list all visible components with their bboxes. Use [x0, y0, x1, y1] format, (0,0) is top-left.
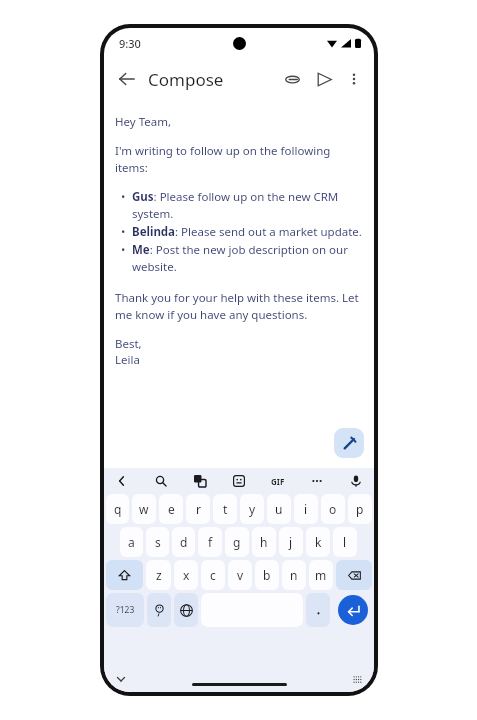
staticText: c	[210, 567, 216, 583]
button[interactable]: g	[225, 527, 249, 557]
button[interactable]: Backspace	[336, 560, 372, 590]
button[interactable]: d	[172, 527, 195, 557]
button[interactable]: b	[255, 560, 279, 590]
button[interactable]: Change language	[174, 593, 198, 627]
button[interactable]: y	[240, 494, 264, 524]
button[interactable]: i	[294, 494, 318, 524]
button[interactable]: h	[252, 527, 276, 557]
button[interactable]: Hide keyboard	[112, 670, 130, 688]
staticText: •	[121, 224, 126, 240]
button[interactable]: Edit	[334, 428, 364, 458]
staticText: w	[139, 501, 149, 517]
staticText: o	[329, 501, 337, 517]
button[interactable]: l	[333, 527, 357, 557]
button[interactable]: Emoji	[147, 593, 171, 627]
button[interactable]: Attach file	[276, 63, 308, 95]
staticText: Gus: Please follow up on the new CRM sys…	[132, 189, 363, 222]
staticText: •	[121, 242, 126, 258]
staticText: Hey Team,	[115, 114, 171, 130]
button[interactable]: o	[321, 494, 345, 524]
button[interactable]: ?123	[106, 593, 144, 627]
button[interactable]: e	[159, 494, 183, 524]
button[interactable]: More	[307, 471, 327, 491]
button[interactable]: More options	[340, 65, 368, 93]
staticText: I'm writing to follow up on the followin…	[115, 143, 363, 176]
staticText: b	[263, 567, 271, 583]
button[interactable]: v	[228, 560, 252, 590]
button[interactable]: x	[174, 560, 198, 590]
staticText: GIF	[271, 476, 285, 487]
button[interactable]: q	[106, 494, 129, 524]
staticText: j	[289, 534, 293, 550]
button[interactable]: Shift	[106, 560, 143, 590]
button[interactable]: Enter	[338, 595, 368, 625]
staticText: y	[249, 501, 256, 517]
staticText: t	[223, 501, 228, 517]
button[interactable]: Search	[151, 471, 171, 491]
button[interactable]: GIF	[268, 471, 288, 491]
staticText: h	[260, 534, 268, 550]
button[interactable]: j	[279, 527, 303, 557]
staticText: m	[315, 567, 327, 583]
staticText: Compose	[148, 68, 224, 91]
staticText: q	[114, 501, 122, 517]
button[interactable]: Back	[110, 62, 144, 96]
staticText: •	[121, 189, 126, 205]
staticText: f	[208, 534, 213, 550]
button[interactable]: a	[120, 527, 143, 557]
button[interactable]: Period	[306, 593, 330, 627]
staticText: u	[275, 501, 283, 517]
staticText: e	[168, 501, 175, 517]
staticText: ?123	[116, 604, 135, 616]
button[interactable]: c	[201, 560, 225, 590]
staticText: Leila	[115, 352, 140, 368]
button[interactable]: r	[186, 494, 210, 524]
button[interactable]: z	[146, 560, 171, 590]
staticText: r	[196, 501, 201, 517]
staticText: Belinda: Please send out a market update…	[132, 224, 362, 240]
staticText: a	[128, 534, 135, 550]
button[interactable]: Translate	[190, 471, 210, 491]
button[interactable]: n	[282, 560, 306, 590]
staticText: 9:30	[119, 36, 141, 51]
button[interactable]: Voice input	[346, 471, 366, 491]
button[interactable]: p	[348, 494, 372, 524]
button[interactable]: f	[198, 527, 222, 557]
staticText: s	[155, 534, 161, 550]
button[interactable]: m	[309, 560, 333, 590]
staticText: i	[304, 501, 308, 517]
button[interactable]: Stickers	[229, 471, 249, 491]
staticText: n	[290, 567, 298, 583]
staticText: g	[233, 534, 241, 550]
button[interactable]: Switch keyboard	[348, 670, 366, 688]
button[interactable]: u	[267, 494, 291, 524]
button[interactable]: w	[132, 494, 156, 524]
button[interactable]: k	[306, 527, 330, 557]
staticText: l	[343, 534, 347, 550]
button[interactable]: s	[146, 527, 169, 557]
button[interactable]: Send	[308, 63, 340, 95]
button[interactable]: t	[213, 494, 237, 524]
staticText: x	[183, 567, 190, 583]
staticText: Thank you for your help with these items…	[115, 290, 363, 323]
staticText: d	[180, 534, 188, 550]
staticText: v	[237, 567, 244, 583]
staticText: z	[156, 567, 162, 583]
button[interactable]: Back	[112, 471, 132, 491]
staticText: Me: Post the new job description on our …	[132, 242, 363, 275]
staticText: k	[315, 534, 322, 550]
staticText: Best,	[115, 336, 142, 352]
staticText: p	[356, 501, 364, 517]
